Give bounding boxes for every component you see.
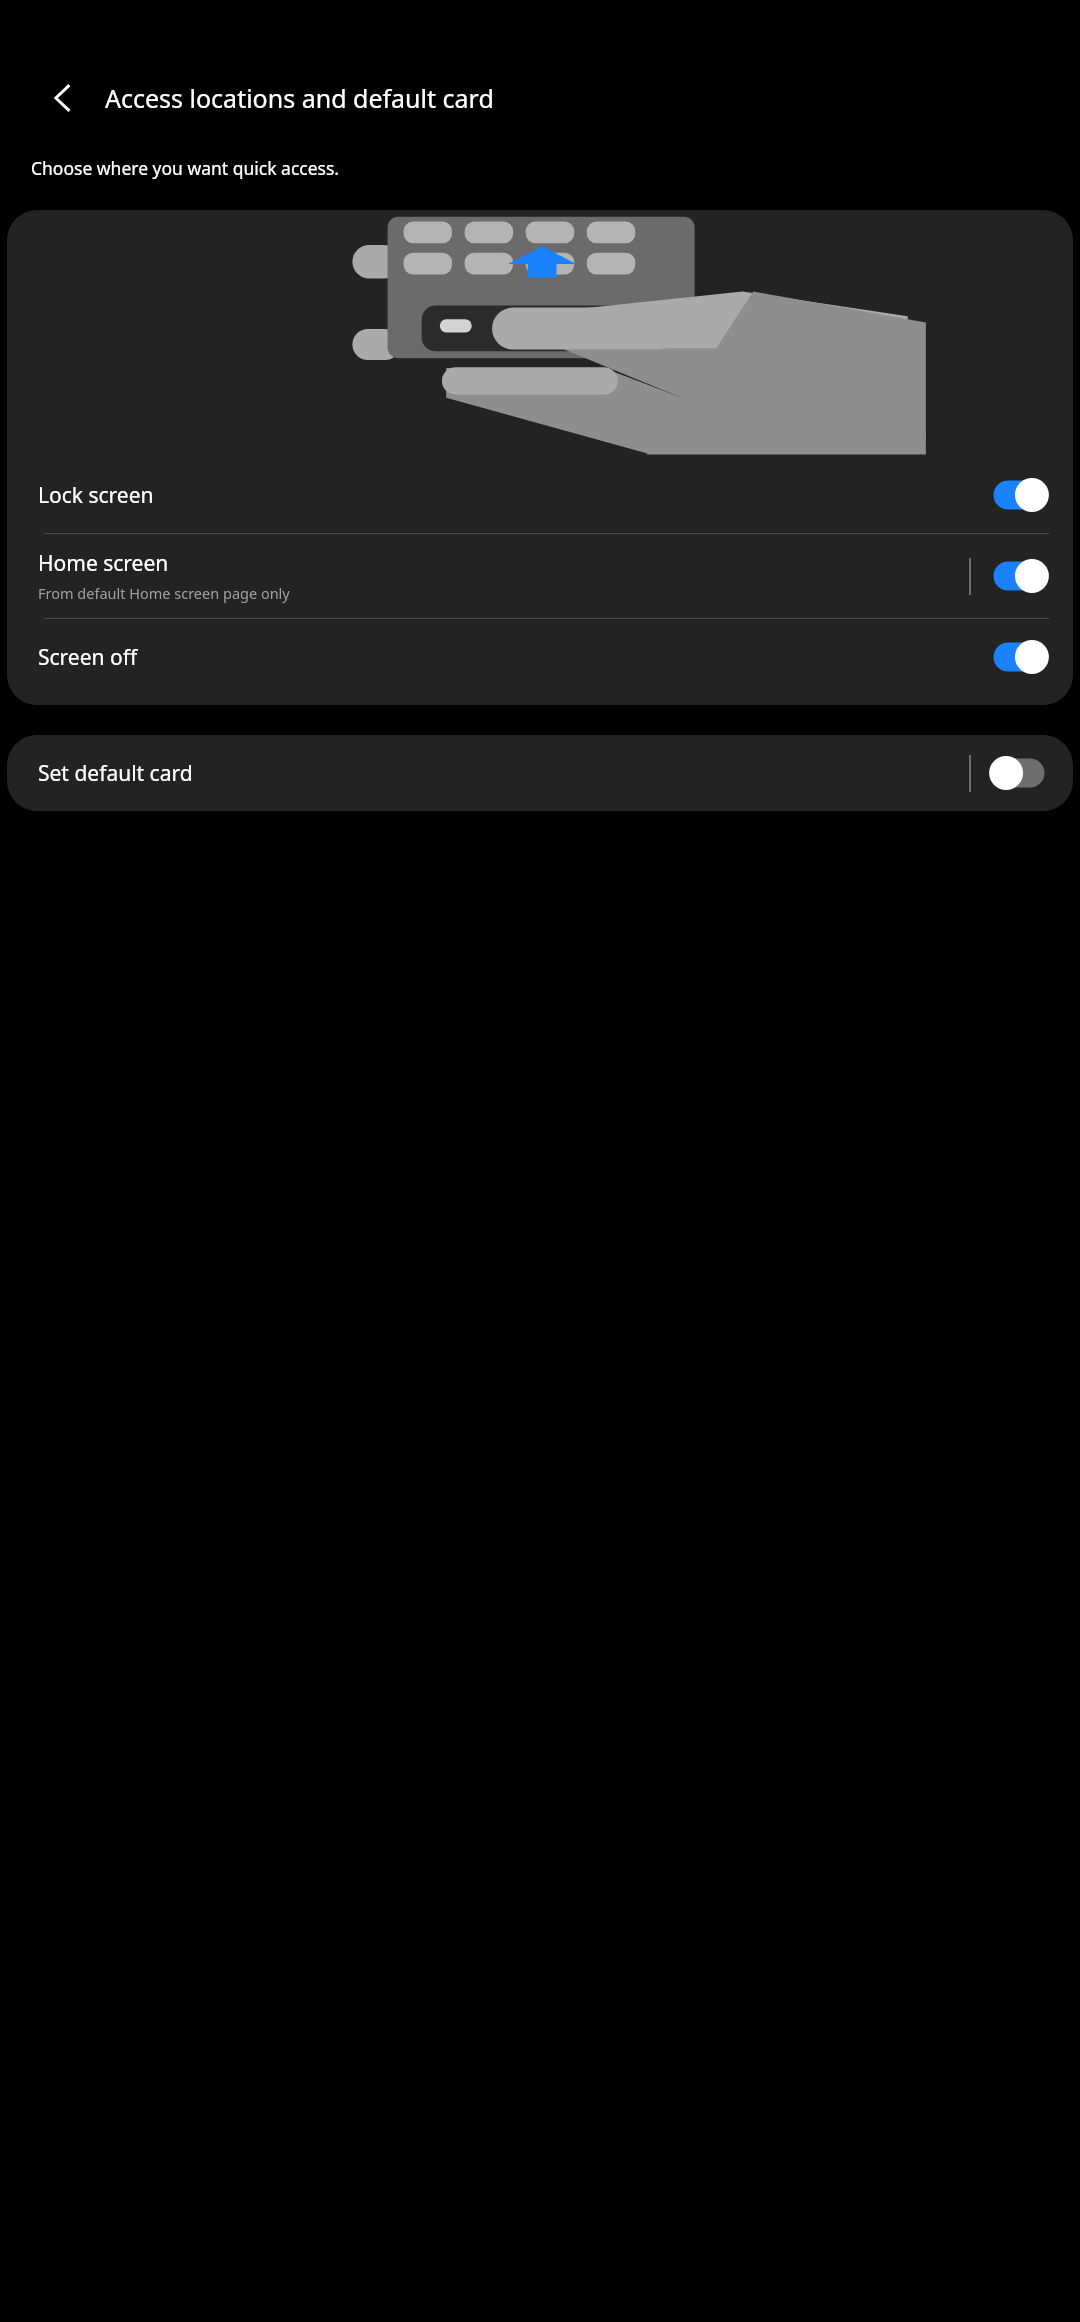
staticText: Lock screen	[38, 481, 154, 510]
button[interactable]: Screen off toggle	[987, 631, 1051, 683]
staticText: Choose where you want quick access.	[31, 156, 340, 180]
button[interactable]: Back	[40, 74, 88, 122]
staticText: From default Home screen page only	[38, 583, 290, 603]
button[interactable]: Home screen toggle	[987, 550, 1051, 602]
staticText: Access locations and default card	[105, 81, 494, 115]
staticText: Screen off	[38, 643, 138, 672]
button[interactable]: Lock screen toggle	[987, 469, 1051, 521]
staticText: Set default card	[38, 759, 193, 788]
button[interactable]: Set default card toggle	[987, 747, 1051, 799]
button[interactable]: Screen off	[7, 619, 1073, 695]
button[interactable]: Set default card	[7, 735, 1073, 811]
staticText: Home screen	[38, 549, 169, 578]
button[interactable]: Lock screen	[7, 457, 1073, 533]
button[interactable]: Home screen	[7, 534, 1073, 618]
